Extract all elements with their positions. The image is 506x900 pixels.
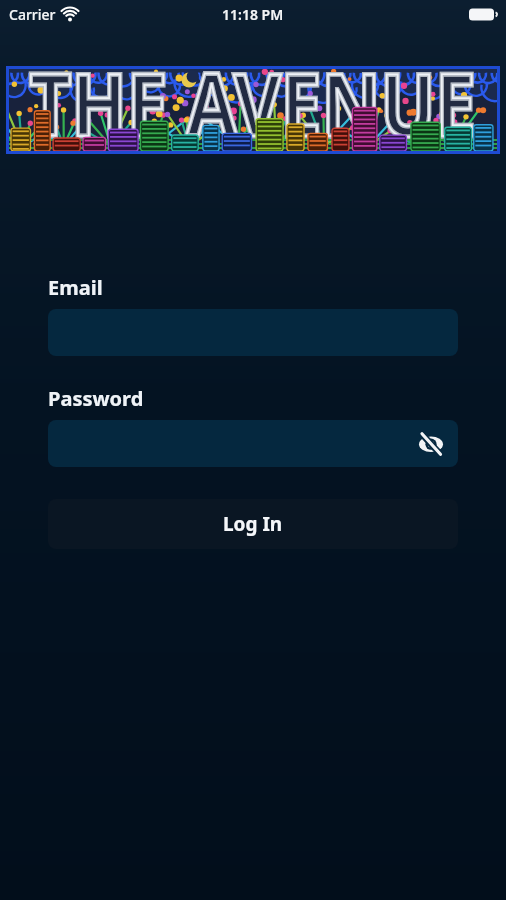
staticText: Log In xyxy=(223,511,283,537)
button[interactable] xyxy=(417,430,444,457)
staticText: 11:18 PM xyxy=(222,5,284,24)
staticText: Carrier xyxy=(9,5,56,24)
button[interactable] xyxy=(48,420,458,467)
button[interactable]: Log In xyxy=(48,499,458,549)
staticText: Email xyxy=(48,274,103,301)
staticText: Password xyxy=(48,385,144,412)
